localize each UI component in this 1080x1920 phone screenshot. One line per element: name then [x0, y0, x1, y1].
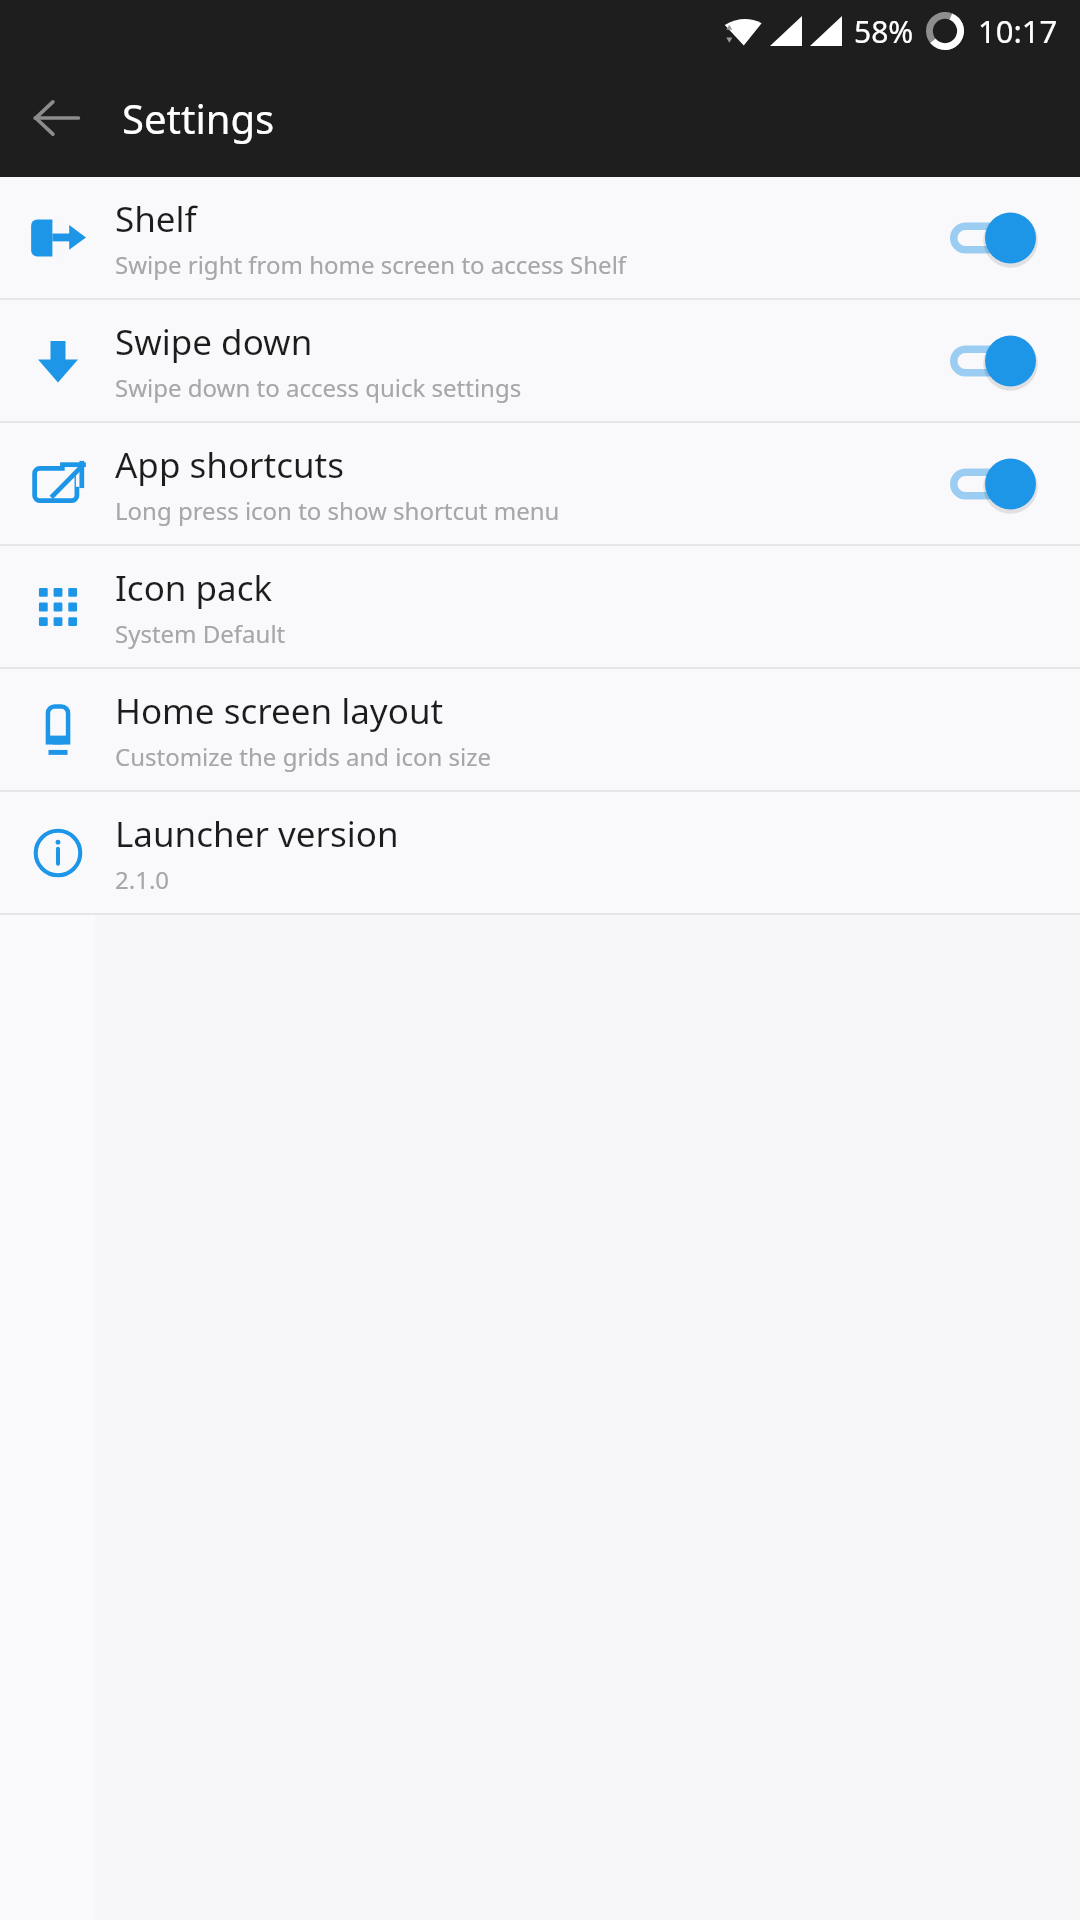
button[interactable]: Swipe down — [0, 300, 1080, 421]
button[interactable]: App shortcuts switch — [905, 439, 1080, 529]
button[interactable]: Back — [20, 82, 92, 154]
staticText: Icon pack — [115, 564, 273, 612]
button[interactable]: Shelf — [0, 177, 1080, 298]
staticText: Settings — [122, 91, 275, 145]
staticText: System Default — [115, 617, 286, 650]
staticText: Shelf — [115, 195, 197, 243]
button[interactable]: Swipe down switch — [905, 316, 1080, 406]
staticText: Swipe right from home screen to access S… — [115, 248, 627, 281]
button[interactable]: Shelf switch — [905, 193, 1080, 283]
button[interactable]: Icon pack — [0, 546, 1080, 667]
staticText: App shortcuts — [115, 441, 345, 489]
staticText: 10:17 — [978, 10, 1058, 52]
staticText: Launcher version — [115, 810, 399, 858]
staticText: Home screen layout — [115, 687, 444, 735]
button[interactable]: Launcher version — [0, 792, 1080, 913]
staticText: 58% — [854, 11, 914, 52]
staticText: Long press icon to show shortcut menu — [115, 494, 560, 527]
staticText: 2.1.0 — [115, 863, 170, 896]
button[interactable]: App shortcuts — [0, 423, 1080, 544]
button[interactable]: Home screen layout — [0, 669, 1080, 790]
staticText: Swipe down — [115, 318, 313, 366]
staticText: Customize the grids and icon size — [115, 740, 492, 773]
staticText: Swipe down to access quick settings — [115, 371, 522, 404]
